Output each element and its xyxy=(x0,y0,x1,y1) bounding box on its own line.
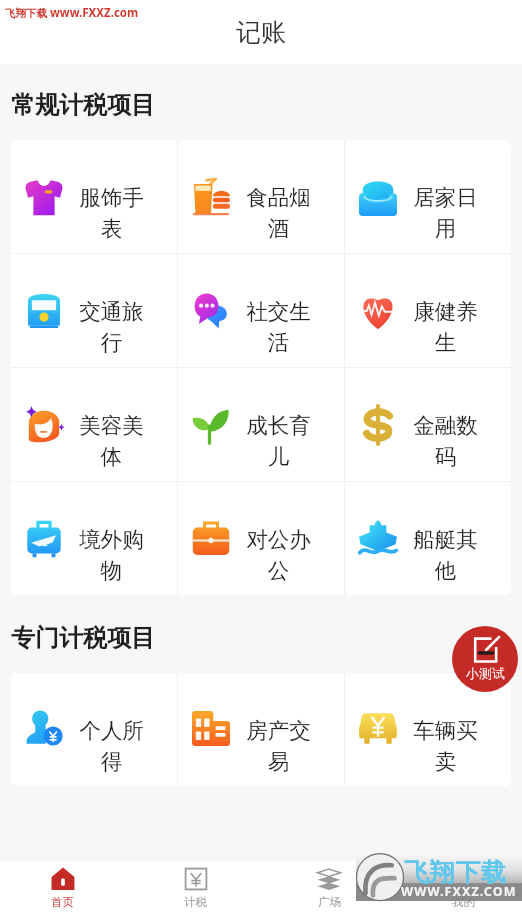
staticText: 船艇其他 xyxy=(412,526,479,585)
staticText: 金融数码 xyxy=(412,412,479,471)
staticText: 首页 xyxy=(51,895,74,909)
staticText: 康健养生 xyxy=(412,298,479,357)
staticText: 我的 xyxy=(452,895,475,909)
staticText: 美容美体 xyxy=(78,412,145,471)
staticText: 常规计税项目 xyxy=(11,90,155,120)
button[interactable]: 房产交易 xyxy=(178,673,344,786)
staticText: 食品烟酒 xyxy=(245,184,312,243)
button[interactable]: 对公办公 xyxy=(178,482,344,595)
button[interactable]: 船艇其他 xyxy=(345,482,511,595)
staticText: 车辆买卖 xyxy=(412,717,479,776)
staticText: 成长育儿 xyxy=(245,412,312,471)
button[interactable]: 车辆买卖 xyxy=(345,673,511,786)
button[interactable]: 广场 xyxy=(262,861,396,914)
staticText: 交通旅行 xyxy=(78,298,145,357)
staticText: 计税 xyxy=(184,895,207,909)
staticText: 小测试 xyxy=(466,665,505,681)
staticText: www.FXXZ.com xyxy=(50,5,139,21)
button[interactable]: 美容美体 xyxy=(11,368,177,481)
staticText: 广场 xyxy=(318,895,341,909)
button[interactable]: 社交生活 xyxy=(178,254,344,367)
button[interactable]: 康健养生 xyxy=(345,254,511,367)
button[interactable]: 首页 xyxy=(0,861,129,914)
button[interactable]: 小测试 xyxy=(452,626,518,692)
staticText: WWW.FXXZ.COM xyxy=(401,883,517,900)
staticText: 专门计税项目 xyxy=(11,623,155,653)
button[interactable]: 境外购物 xyxy=(11,482,177,595)
button[interactable]: 服饰手表 xyxy=(11,140,177,253)
button[interactable]: 成长育儿 xyxy=(178,368,344,481)
staticText: 服饰手表 xyxy=(78,184,145,243)
staticText: 飞翔下载 xyxy=(5,7,47,20)
staticText: 社交生活 xyxy=(245,298,312,357)
staticText: 居家日用 xyxy=(412,184,479,243)
staticText: 房产交易 xyxy=(245,717,312,776)
staticText: 境外购物 xyxy=(78,526,145,585)
button[interactable]: 食品烟酒 xyxy=(178,140,344,253)
staticText: 飞翔下载 xyxy=(404,857,507,888)
staticText: 对公办公 xyxy=(245,526,312,585)
button[interactable]: 我的 xyxy=(396,861,522,914)
staticText: 个人所得 xyxy=(78,717,145,776)
button[interactable]: 居家日用 xyxy=(345,140,511,253)
button[interactable]: 交通旅行 xyxy=(11,254,177,367)
button[interactable]: 计税 xyxy=(129,861,262,914)
button[interactable]: 个人所得 xyxy=(11,673,177,786)
staticText: 记账 xyxy=(236,17,286,48)
button[interactable]: 金融数码 xyxy=(345,368,511,481)
